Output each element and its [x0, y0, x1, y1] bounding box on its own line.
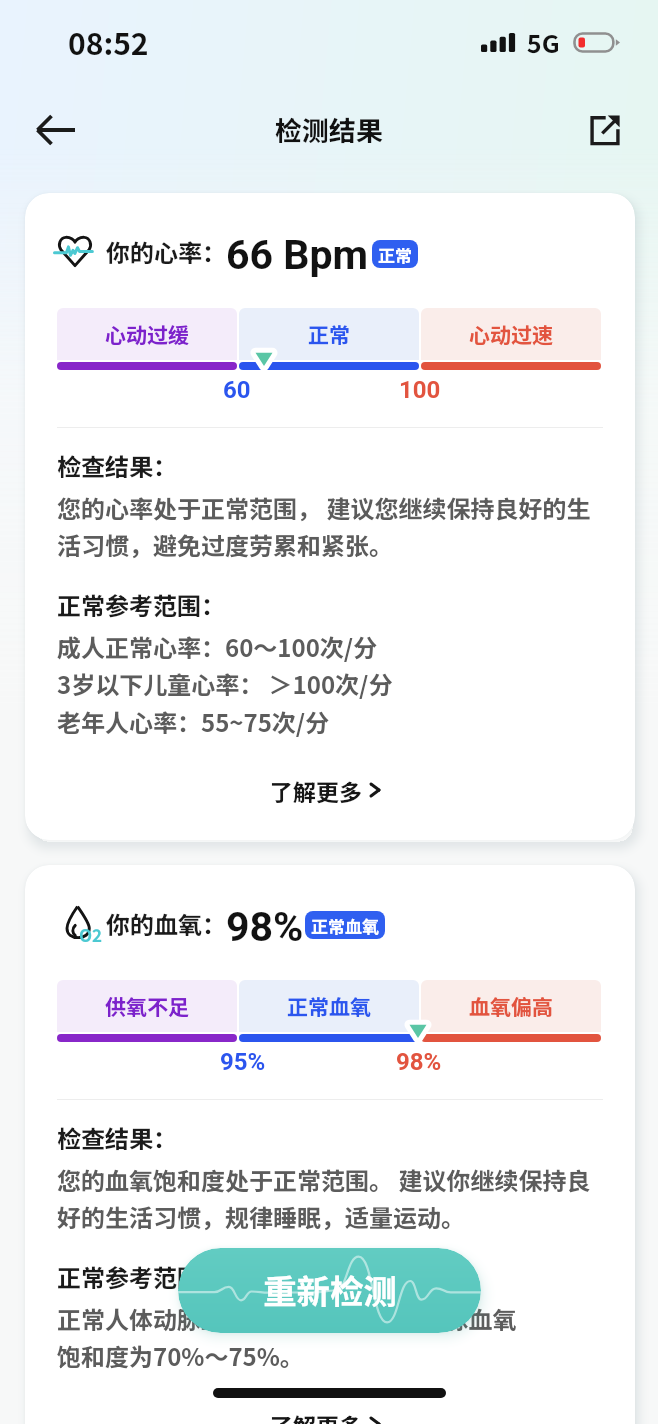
button[interactable]: 重新检测: [178, 1248, 481, 1333]
staticText: 您的血氧饱和度处于正常范围。 建议你继续保持良 好的生活习惯，规律睡眠，适量运动…: [57, 1162, 591, 1234]
button[interactable]: Back: [27, 101, 85, 159]
staticText: 了解更多: [270, 1408, 362, 1424]
staticText: 正常血氧: [311, 913, 379, 938]
staticText: 检查结果：: [57, 448, 177, 483]
staticText: 供氧不足: [105, 991, 189, 1021]
staticText: 心动过缓: [105, 319, 189, 349]
staticText: 检查结果：: [57, 1120, 177, 1155]
staticText: 正常血氧: [287, 991, 371, 1021]
staticText: 5G: [527, 24, 560, 60]
staticText: 98%: [226, 903, 304, 951]
staticText: 正常人体动脉血氧饱和度为98%，静脉血氧 饱和度为70%～75%。: [57, 1301, 517, 1373]
staticText: 正常参考范围：: [57, 1259, 225, 1294]
staticText: 重新检测: [263, 1265, 397, 1314]
staticText: 08:52: [68, 20, 149, 63]
staticText: 100: [399, 376, 441, 404]
staticText: 你的血氧：: [106, 906, 226, 941]
staticText: 98%: [396, 1048, 442, 1076]
staticText: 正常参考范围：: [57, 587, 225, 622]
staticText: O2: [79, 922, 103, 947]
button[interactable]: 了解更多: [25, 770, 630, 810]
staticText: 你的心率：: [106, 234, 226, 269]
staticText: 了解更多: [270, 774, 362, 807]
button[interactable]: Share: [576, 101, 634, 159]
staticText: 66 Bpm: [226, 231, 368, 279]
staticText: 95%: [220, 1048, 266, 1076]
staticText: 60: [223, 376, 251, 404]
staticText: 成人正常心率：60～100次/分 3岁以下儿童心率： ＞100次/分 老年人心率…: [57, 629, 393, 739]
staticText: 血氧偏高: [469, 991, 553, 1021]
button[interactable]: 了解更多: [25, 1404, 630, 1424]
staticText: 正常: [378, 242, 412, 267]
staticText: 检测结果: [275, 110, 383, 149]
staticText: 您的心率处于正常范围， 建议您继续保持良好的生 活习惯，避免过度劳累和紧张。: [57, 490, 591, 562]
staticText: 正常: [308, 319, 350, 349]
staticText: 心动过速: [469, 319, 553, 349]
